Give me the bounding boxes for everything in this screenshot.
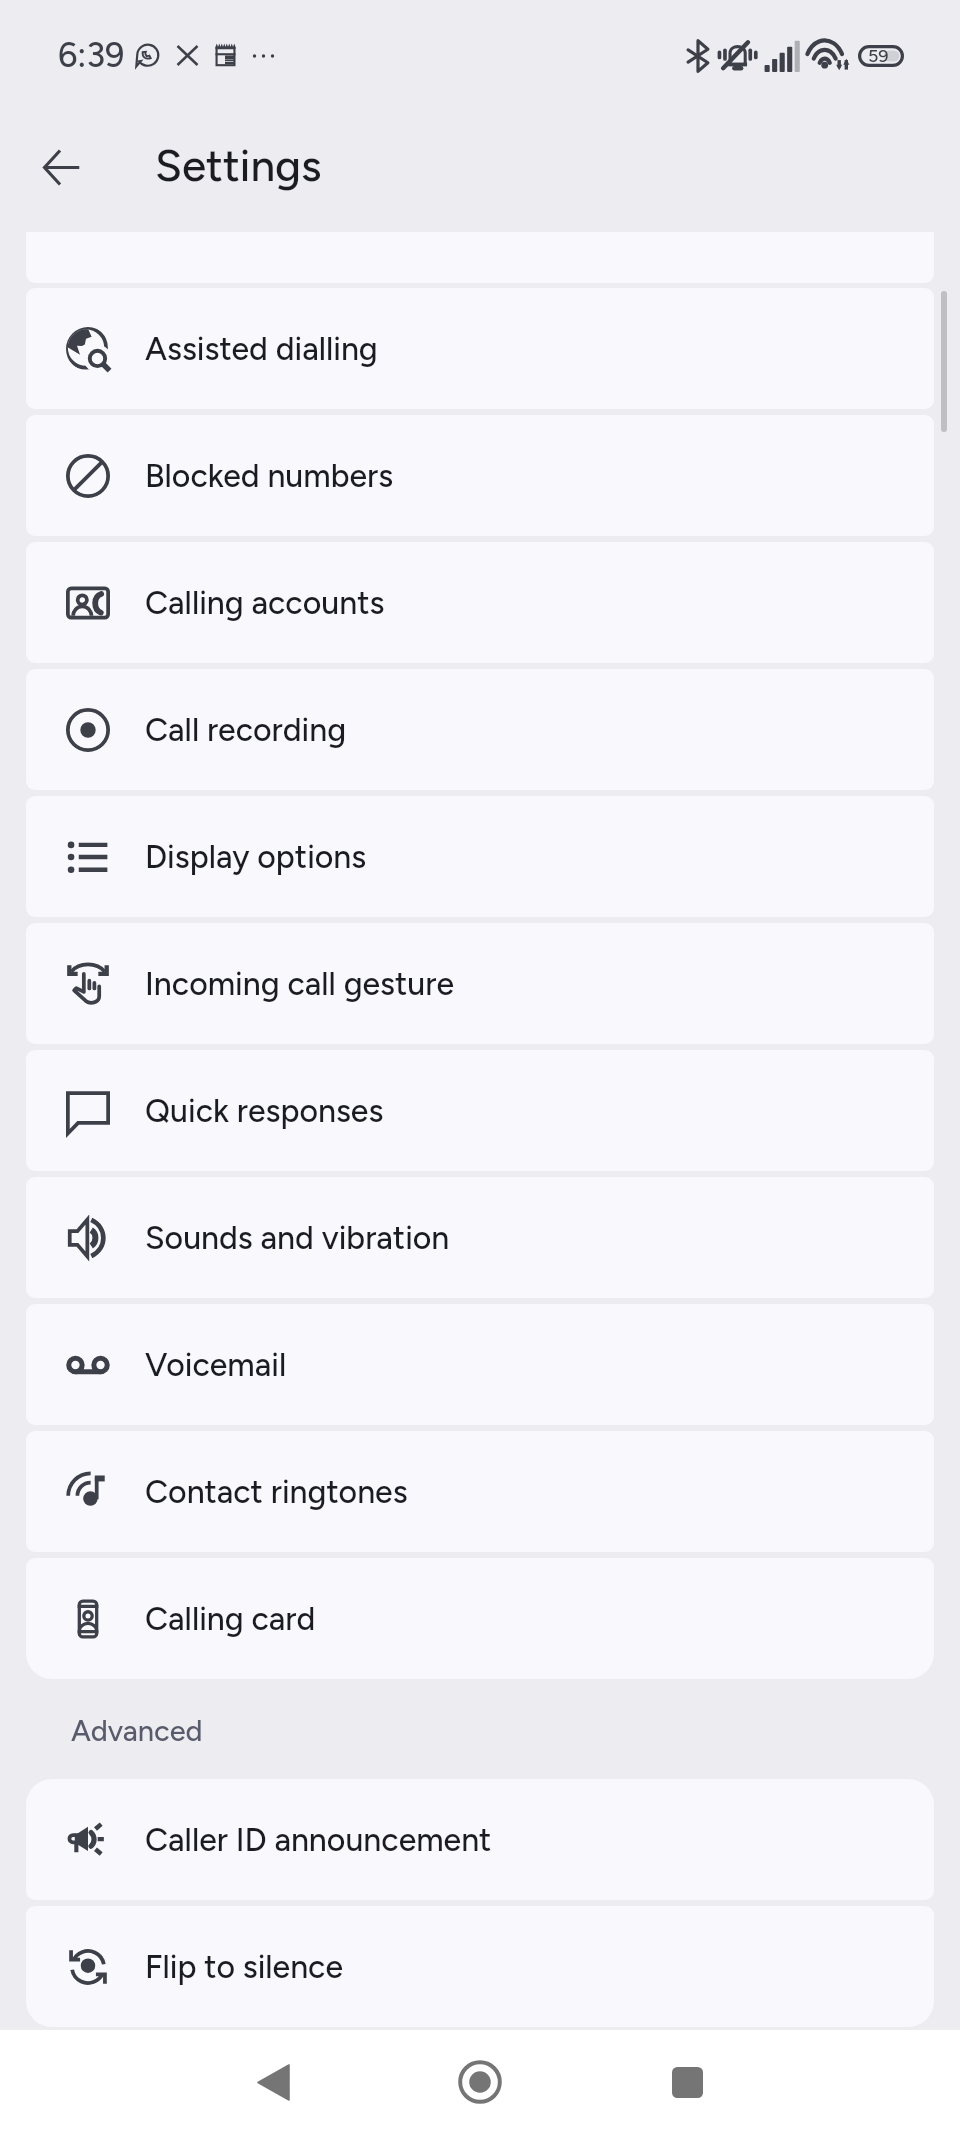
staticText: 59: [868, 45, 889, 67]
button[interactable]: Calling accounts: [26, 542, 934, 663]
staticText: Call recording: [145, 711, 347, 749]
staticText: Quick responses: [145, 1092, 384, 1130]
staticText: Voicemail: [145, 1346, 287, 1384]
staticText: Calling accounts: [145, 584, 385, 622]
staticText: Display options: [145, 838, 367, 876]
staticText: Advanced: [71, 1713, 203, 1748]
button[interactable]: Caller ID announcement: [26, 1779, 934, 1900]
button[interactable]: Calling card: [26, 1558, 934, 1679]
staticText: Caller ID announcement: [145, 1821, 492, 1859]
staticText: 6:39: [58, 35, 125, 76]
staticText: Calling card: [145, 1600, 316, 1638]
button[interactable]: Recents: [642, 2037, 732, 2127]
staticText: Contact ringtones: [145, 1473, 408, 1511]
button[interactable]: Back: [228, 2037, 318, 2127]
staticText: Incoming call gesture: [145, 965, 454, 1003]
button[interactable]: Sounds and vibration: [26, 1177, 934, 1298]
staticText: Blocked numbers: [145, 457, 394, 495]
button[interactable]: Assisted dialling: [26, 288, 934, 409]
button[interactable]: Contact ringtones: [26, 1431, 934, 1552]
staticText: Assisted dialling: [145, 330, 378, 368]
staticText: Flip to silence: [145, 1948, 343, 1986]
button[interactable]: Blocked numbers: [26, 415, 934, 536]
staticText: Settings: [155, 139, 322, 192]
button[interactable]: Back: [23, 129, 99, 205]
button[interactable]: Flip to silence: [26, 1906, 934, 2027]
button[interactable]: Call recording: [26, 669, 934, 790]
button[interactable]: Quick responses: [26, 1050, 934, 1171]
button[interactable]: Incoming call gesture: [26, 923, 934, 1044]
button[interactable]: Display options: [26, 796, 934, 917]
button[interactable]: Voicemail: [26, 1304, 934, 1425]
staticText: Sounds and vibration: [145, 1219, 450, 1257]
button[interactable]: Home: [435, 2037, 525, 2127]
